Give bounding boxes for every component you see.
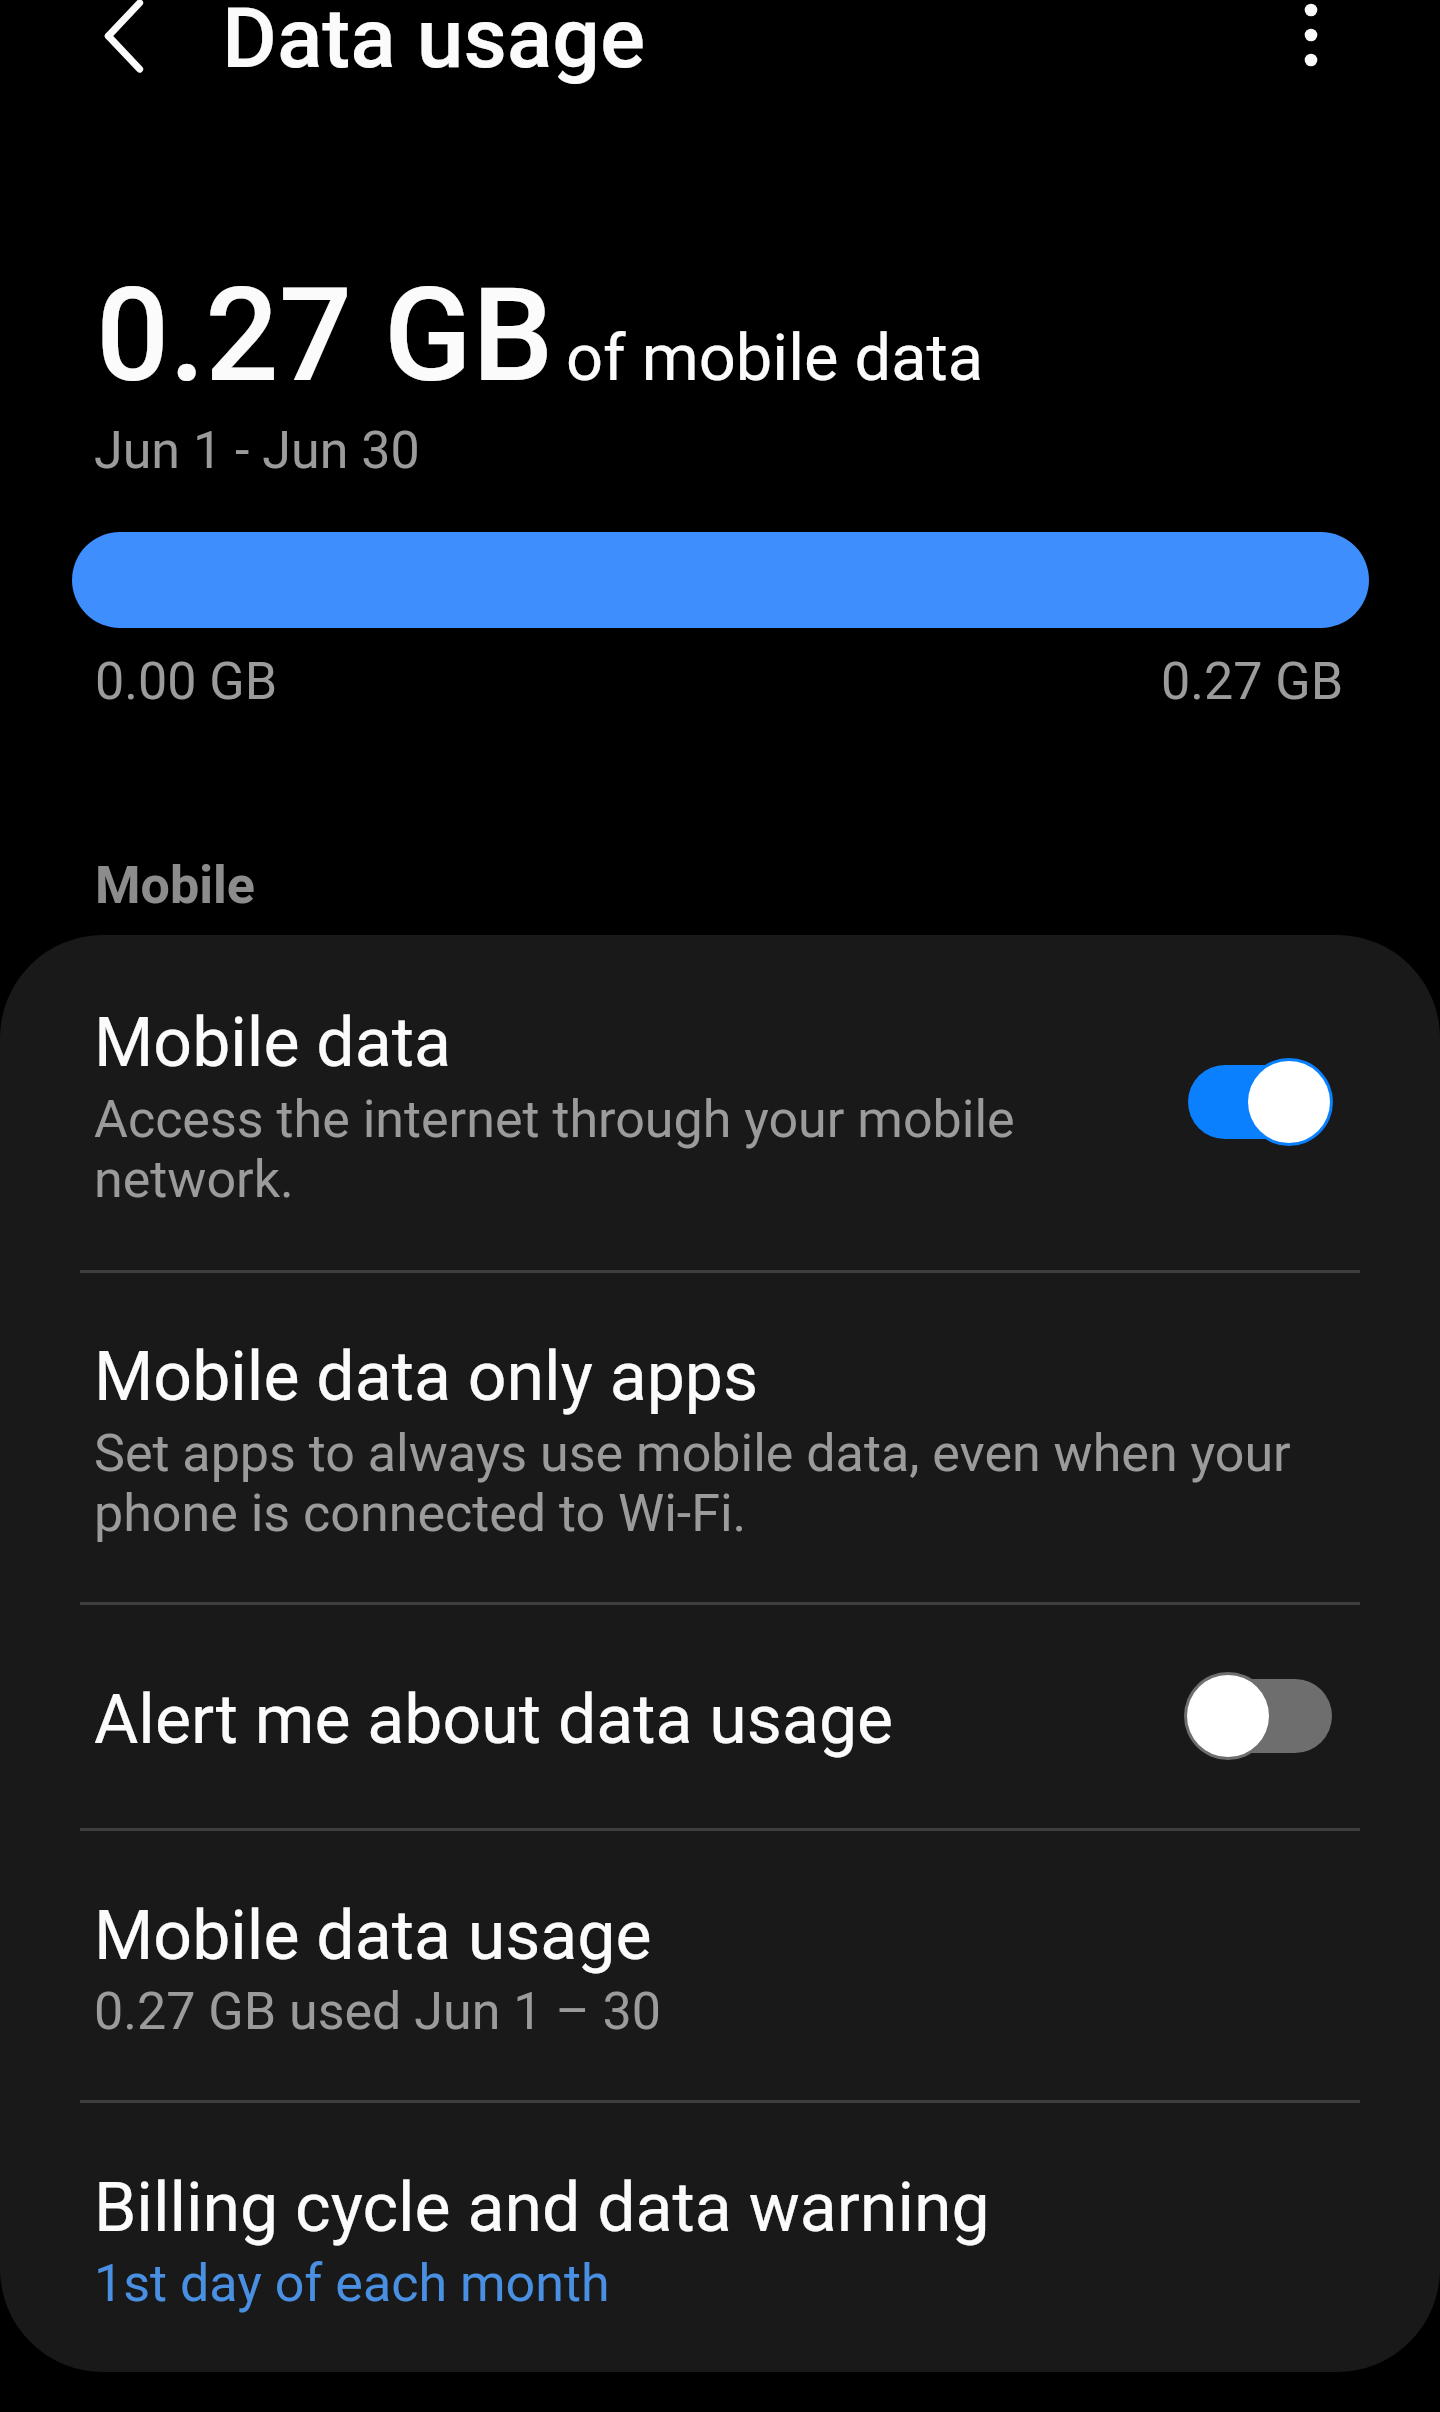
staticText: Mobile data (94, 1003, 451, 1083)
button[interactable]: More options (1251, 0, 1371, 95)
button[interactable]: Turn on (1188, 1671, 1332, 1761)
staticText: Mobile (95, 855, 255, 916)
button[interactable]: Billing cycle and data warning (0, 2103, 1440, 2372)
button[interactable]: Mobile data only apps (0, 1273, 1440, 1602)
staticText: 0.27 GB used Jun 1 – 30 (94, 1981, 1344, 2042)
staticText: 1st day of each month (94, 2253, 1344, 2314)
staticText: Set apps to always use mobile data, even… (94, 1423, 1344, 1543)
staticText: Alert me about data usage (94, 1680, 894, 1760)
button[interactable]: Navigate up (64, 0, 184, 96)
staticText: Mobile data only apps (94, 1337, 759, 1417)
staticText: 0.27 GB (1161, 651, 1344, 712)
staticText: 0.27 GB (96, 260, 554, 411)
staticText: of mobile data (566, 320, 984, 396)
staticText: Billing cycle and data warning (94, 2168, 990, 2248)
button[interactable]: Turn off (1188, 1057, 1332, 1147)
staticText: Data usage (222, 0, 645, 87)
button[interactable]: Mobile data usage (0, 1831, 1440, 2100)
staticText: Access the internet through your mobile … (94, 1089, 1164, 1209)
staticText: Mobile data usage (94, 1896, 652, 1976)
staticText: Jun 1 - Jun 30 (94, 420, 420, 481)
staticText: 0.00 GB (95, 651, 278, 712)
button[interactable]: Mobile data (0, 935, 1440, 1270)
button[interactable]: Alert me about data usage (0, 1605, 1440, 1828)
